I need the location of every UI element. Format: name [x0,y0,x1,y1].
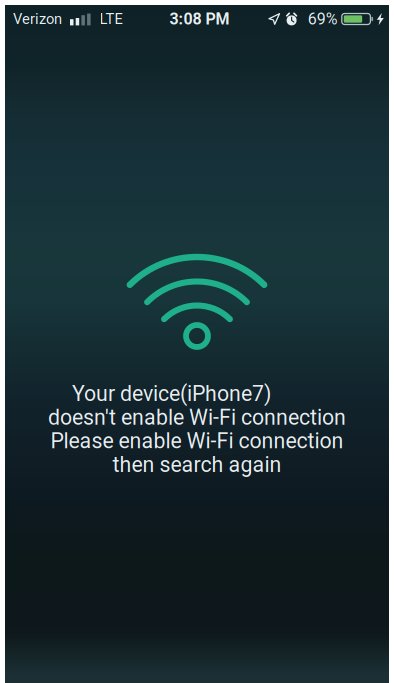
staticText: then search again [112,452,281,477]
staticText: Your device(iPhone7) [72,381,271,406]
staticText: LTE [100,10,123,28]
staticText: doesn't enable Wi-Fi connection [48,405,346,430]
staticText: 3:08 PM [169,10,229,28]
staticText: Verizon [13,10,62,28]
staticText: Please enable Wi-Fi connection [50,428,343,453]
staticText: 69% [308,10,338,28]
